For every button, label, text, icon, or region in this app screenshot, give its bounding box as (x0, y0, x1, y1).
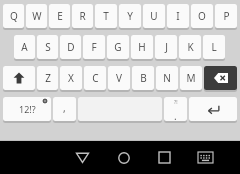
staticText: 12!? (19, 103, 36, 115)
staticText: C (92, 71, 99, 85)
staticText: M (186, 71, 196, 85)
button[interactable]: N (156, 66, 178, 92)
button[interactable]: J (155, 35, 177, 61)
button[interactable]: Symbols and settings (3, 97, 51, 123)
staticText: S (45, 40, 51, 54)
button[interactable]: Enter (189, 97, 237, 123)
button[interactable]: O (191, 4, 213, 30)
staticText: ?! (174, 99, 178, 106)
button[interactable]: Z (37, 66, 58, 92)
staticText: V (116, 71, 122, 85)
button[interactable]: F (83, 35, 105, 61)
button[interactable]: Comma (53, 97, 76, 123)
staticText: W (32, 9, 42, 23)
button[interactable]: C (84, 66, 106, 92)
staticText: Z (45, 71, 51, 85)
staticText: P (223, 9, 230, 23)
button[interactable]: Space (78, 97, 162, 123)
button[interactable]: G (107, 35, 129, 61)
staticText: . (174, 109, 177, 121)
button[interactable]: E (49, 4, 70, 30)
button[interactable]: Back (62, 141, 103, 174)
button[interactable]: M (180, 66, 202, 92)
button[interactable]: Backspace (204, 66, 237, 92)
button[interactable]: W (26, 4, 47, 30)
staticText: R (79, 9, 86, 23)
button[interactable]: Recent apps (144, 141, 185, 174)
staticText: J (165, 40, 168, 54)
button[interactable]: A (14, 35, 35, 61)
staticText: K (187, 40, 194, 54)
button[interactable]: S (37, 35, 58, 61)
button[interactable]: X (60, 66, 82, 92)
button[interactable]: Shift (3, 66, 35, 92)
staticText: A (21, 40, 28, 54)
button[interactable]: T (95, 4, 117, 30)
staticText: Y (127, 9, 133, 23)
button[interactable]: H (131, 35, 153, 61)
staticText: E (57, 9, 63, 23)
button[interactable]: Home (103, 141, 144, 174)
staticText: U (150, 9, 158, 23)
button[interactable]: Y (119, 4, 141, 30)
staticText: G (114, 40, 122, 54)
button[interactable]: R (72, 4, 93, 30)
staticText: I (176, 9, 180, 23)
staticText: F (91, 40, 97, 54)
button[interactable]: I (167, 4, 189, 30)
staticText: D (67, 40, 75, 54)
staticText: T (103, 9, 109, 23)
button[interactable]: Q (3, 4, 24, 30)
button[interactable]: P (215, 4, 237, 30)
staticText: B (140, 71, 147, 85)
button[interactable]: Switch keyboard (185, 141, 226, 174)
button[interactable]: V (108, 66, 130, 92)
staticText: X (68, 71, 74, 85)
button[interactable]: D (60, 35, 81, 61)
staticText: L (211, 40, 217, 54)
staticText: N (163, 71, 171, 85)
button[interactable]: K (179, 35, 201, 61)
staticText: Q (10, 9, 18, 23)
button[interactable]: B (132, 66, 154, 92)
button[interactable]: L (203, 35, 225, 61)
button[interactable]: Period (164, 97, 187, 123)
staticText: , (63, 101, 66, 115)
staticText: O (198, 9, 206, 23)
button[interactable]: U (143, 4, 165, 30)
staticText: H (138, 40, 146, 54)
